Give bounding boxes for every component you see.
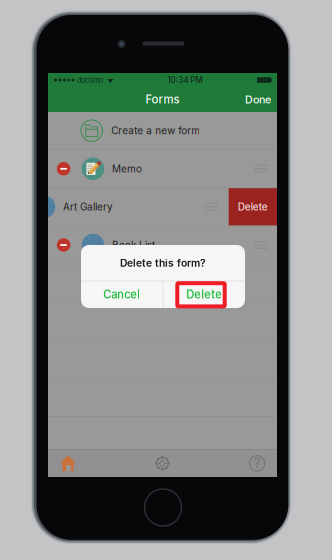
- staticText: Forms: [145, 93, 179, 106]
- button[interactable]: Delete: [229, 188, 277, 226]
- button[interactable]: Cancel: [81, 281, 163, 307]
- staticText: docomo: [77, 76, 103, 84]
- staticText: Delete: [186, 288, 222, 301]
- button[interactable]: Art Gallery: [0, 188, 228, 226]
- staticText: Memo: [112, 163, 142, 175]
- button[interactable]: Delete: [163, 281, 245, 307]
- staticText: Delete this form?: [120, 257, 206, 269]
- button[interactable]: Help: [237, 450, 277, 477]
- staticText: Art Gallery: [63, 201, 113, 213]
- staticText: ?: [254, 455, 260, 471]
- staticText: Done: [245, 93, 271, 106]
- button[interactable]: Book List: [48, 226, 277, 264]
- staticText: Create a new form: [111, 125, 200, 137]
- button[interactable]: Home: [48, 450, 88, 477]
- button[interactable]: Create a new form: [48, 112, 277, 149]
- button[interactable]: Memo: [48, 150, 277, 187]
- staticText: Book List: [112, 239, 155, 251]
- button[interactable]: Settings: [142, 450, 182, 477]
- staticText: Delete: [238, 201, 268, 213]
- staticText: Cancel: [103, 288, 140, 301]
- staticText: 10:34 PM: [167, 75, 203, 85]
- button[interactable]: Done: [237, 87, 277, 112]
